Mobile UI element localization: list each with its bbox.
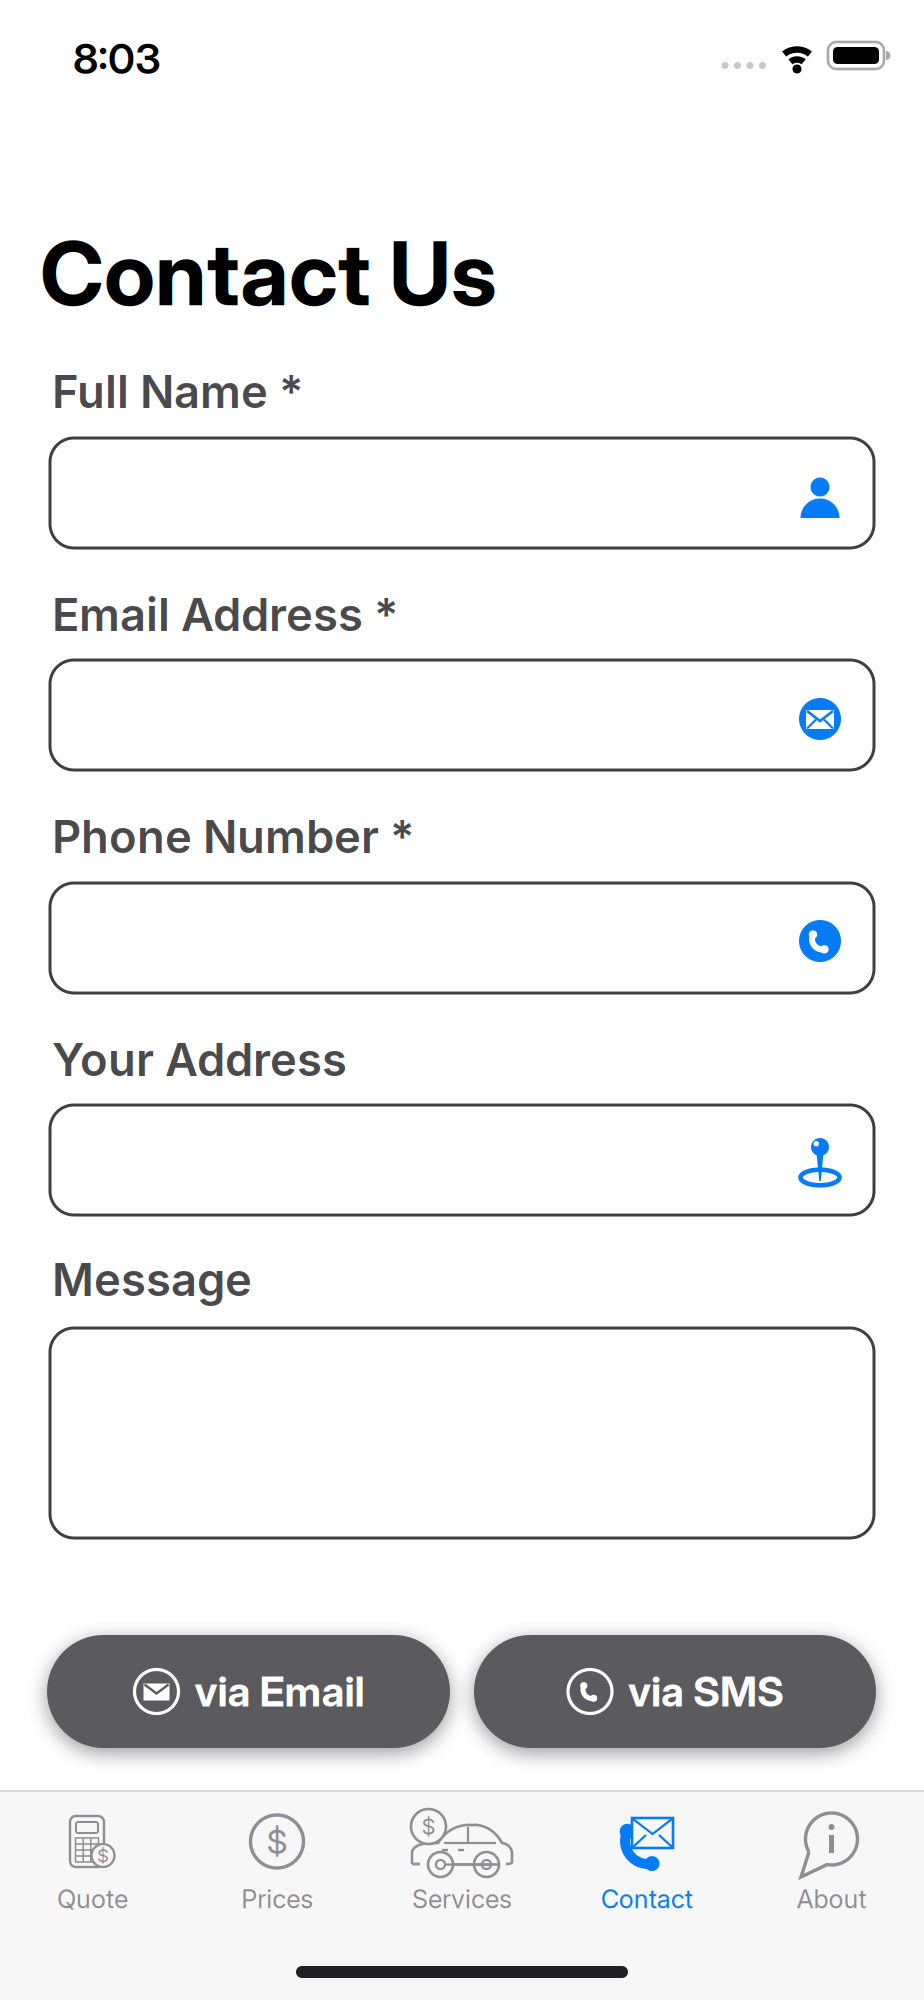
staticText: Quote [57,1884,128,1914]
button[interactable]: via Email [47,1635,450,1748]
staticText: Full Name * [52,364,303,419]
staticText: 8:03 [73,33,161,84]
staticText: Services [412,1884,512,1914]
staticText: About [797,1884,867,1914]
staticText: Message [52,1252,252,1307]
staticText: $ [266,1821,287,1862]
staticText: via Email [194,1666,364,1716]
staticText: Email Address * [52,587,398,642]
button[interactable]: About [739,1792,924,1940]
staticText: Your Address [52,1032,347,1087]
button[interactable]: Services [370,1792,554,1940]
staticText: $ [421,1813,435,1840]
button[interactable]: Quote [0,1792,185,1940]
button[interactable]: Contact [554,1792,739,1940]
staticText: Contact Us [40,220,497,326]
staticText: via SMS [628,1666,784,1716]
button[interactable]: Prices [185,1792,370,1940]
staticText: $ [97,1844,109,1867]
button[interactable]: via SMS [474,1635,876,1748]
staticText: Contact [601,1884,693,1914]
staticText: Phone Number * [52,809,414,864]
staticText: Prices [241,1884,313,1914]
